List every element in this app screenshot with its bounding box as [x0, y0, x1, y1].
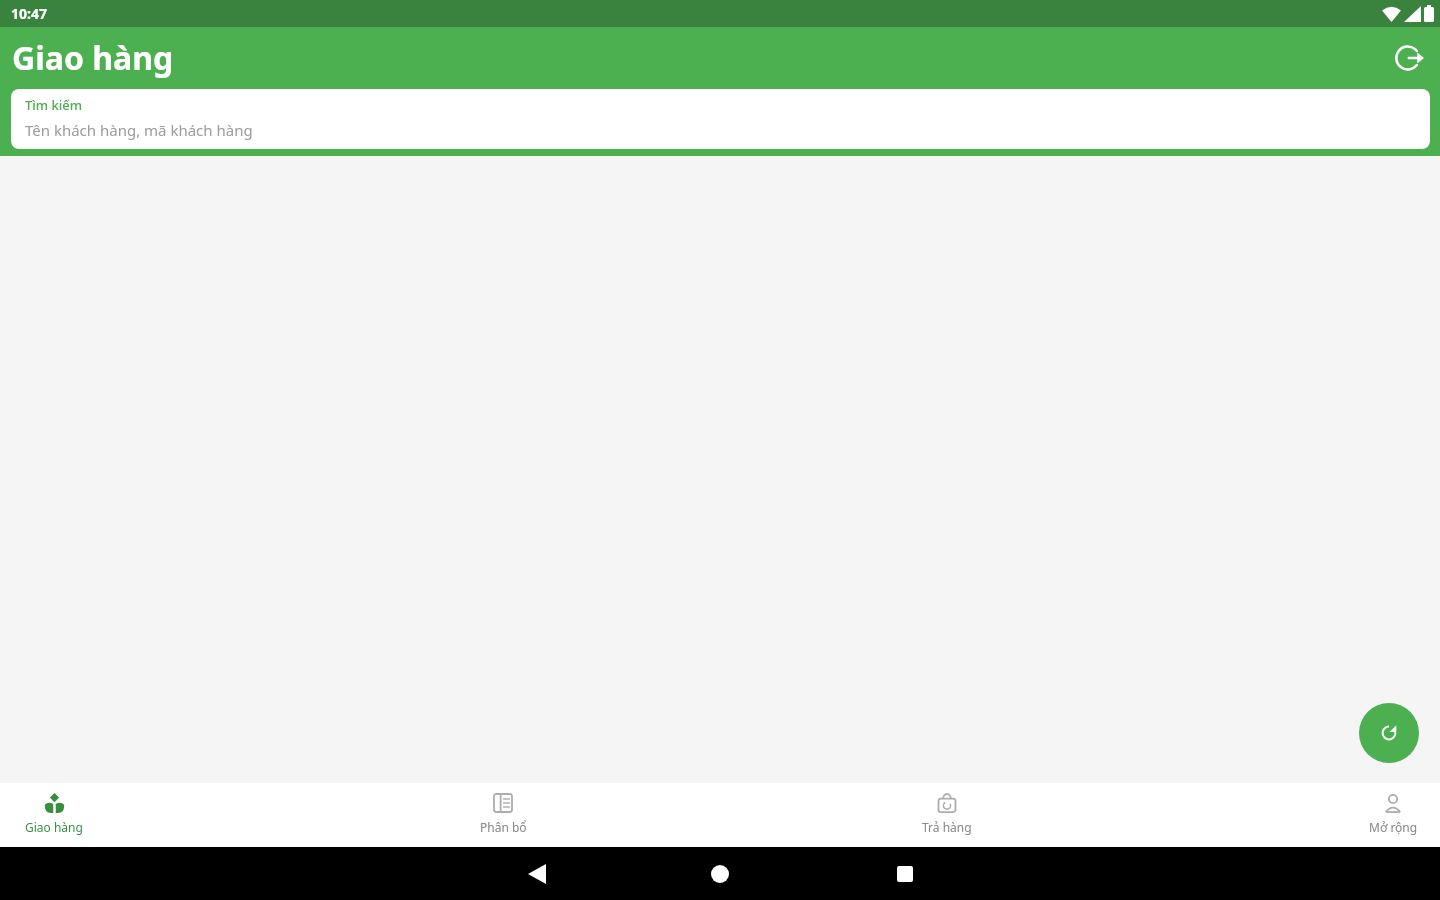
button[interactable] — [528, 864, 546, 884]
button[interactable] — [711, 865, 729, 883]
button[interactable]: Tìm kiếm — [11, 89, 1430, 149]
staticText: Tìm kiếm — [25, 96, 83, 114]
staticText: Mở rộng — [1369, 819, 1418, 835]
staticText: Giao hàng — [12, 36, 174, 80]
button[interactable]: Giao hàng — [0, 792, 114, 856]
staticText: 10:47 — [11, 4, 47, 23]
button[interactable]: Phân bổ — [443, 792, 563, 856]
staticText: Phân bổ — [480, 819, 527, 835]
staticText: Giao hàng — [25, 819, 83, 835]
button[interactable] — [1394, 42, 1426, 74]
button[interactable]: Mở rộng — [1333, 792, 1440, 856]
button[interactable] — [1359, 703, 1419, 763]
staticText: Trả hàng — [922, 819, 972, 835]
staticText: Tên khách hàng, mã khách hàng — [25, 120, 253, 140]
button[interactable] — [897, 866, 913, 882]
button[interactable]: Trả hàng — [887, 792, 1007, 856]
